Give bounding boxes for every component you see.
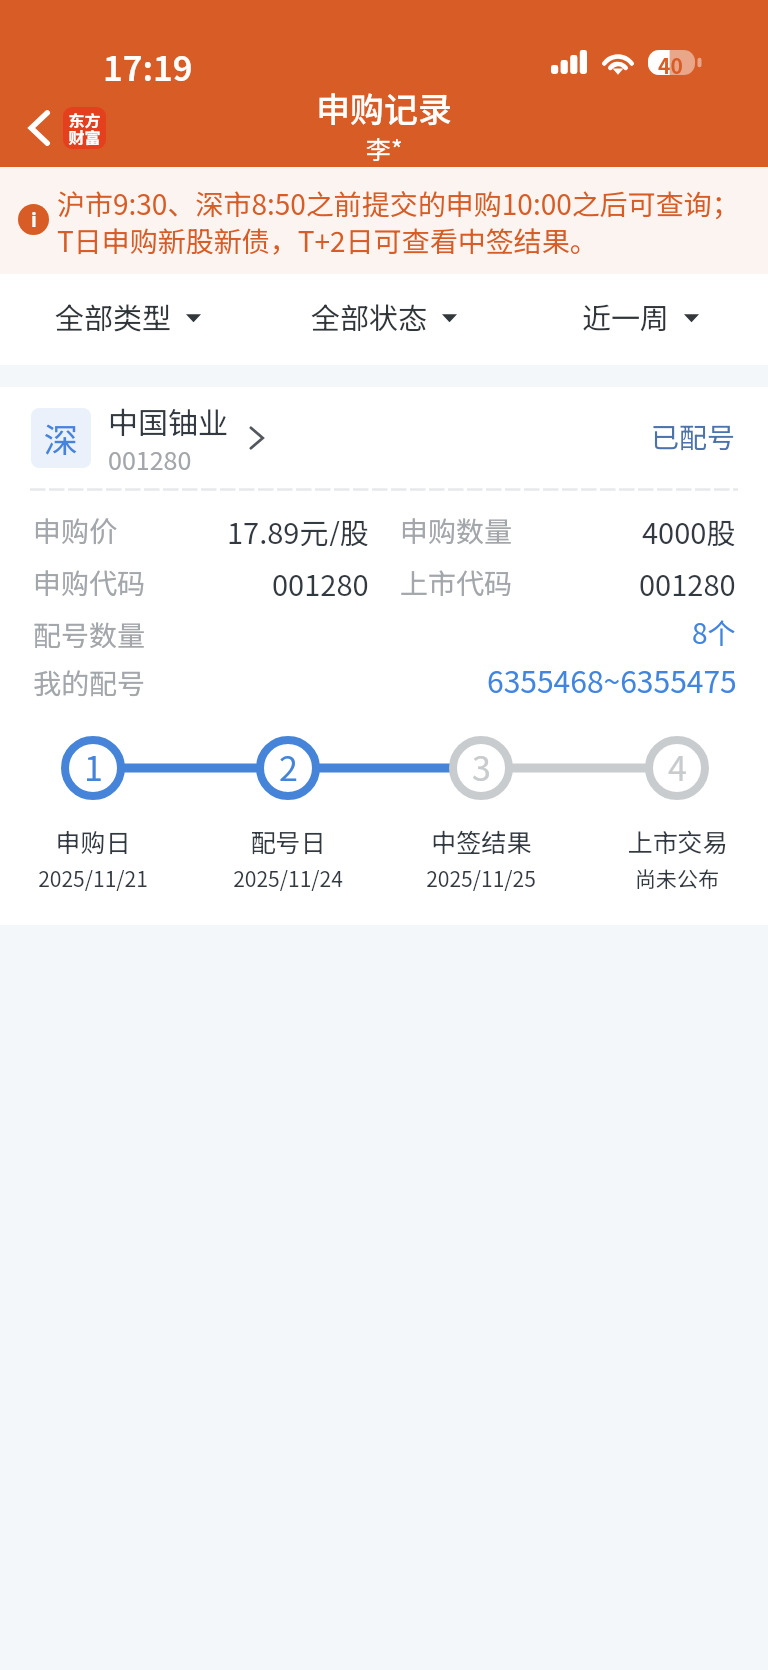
staticText: 2025/11/21 <box>38 863 148 893</box>
staticText: 001280 <box>272 562 369 598</box>
staticText: 4000股 <box>642 510 736 546</box>
staticText: 001280 <box>108 441 192 477</box>
button[interactable]: Back <box>20 103 112 153</box>
staticText: 40 <box>658 50 683 75</box>
staticText: 沪市9:30、深市8:50之前提交的申购10:00之后可查询； T日申购新股新债… <box>57 183 740 260</box>
staticText: 全部状态 <box>311 295 428 337</box>
staticText: 配号日 <box>250 823 326 859</box>
staticText: 4 <box>668 742 687 791</box>
staticText: 中签结果 <box>431 823 532 859</box>
staticText: i <box>31 205 37 233</box>
staticText: 东方 财富 <box>68 108 101 149</box>
staticText: 申购价 <box>33 510 118 546</box>
staticText: 申购日 <box>55 823 131 859</box>
staticText: 李* <box>366 130 403 166</box>
staticText: 我的配号 <box>33 662 146 700</box>
staticText: 深 <box>44 414 78 463</box>
staticText: 中国铀业 <box>108 399 228 442</box>
staticText: 1 <box>84 742 103 791</box>
staticText: 全部类型 <box>55 295 172 337</box>
staticText: 2025/11/25 <box>426 863 536 893</box>
staticText: 2025/11/24 <box>233 863 343 893</box>
button[interactable]: 深 <box>0 387 768 489</box>
staticText: 配号数量 <box>33 614 146 648</box>
staticText: 3 <box>472 742 491 791</box>
staticText: 已配号 <box>651 416 736 457</box>
staticText: 尚未公布 <box>635 863 719 893</box>
staticText: 17:19 <box>103 42 193 91</box>
staticText: 申购代码 <box>33 562 146 598</box>
button[interactable]: 近一周 <box>512 295 768 337</box>
staticText: 上市交易 <box>627 823 728 859</box>
staticText: 8个 <box>692 612 736 646</box>
button[interactable]: 全部状态 <box>256 295 512 337</box>
staticText: 上市代码 <box>400 562 513 598</box>
staticText: 申购记录 <box>316 83 452 132</box>
staticText: 17.89元/股 <box>227 510 369 546</box>
staticText: 6355468~6355475 <box>487 658 737 696</box>
staticText: 申购数量 <box>400 510 513 546</box>
staticText: 001280 <box>639 562 736 598</box>
staticText: 2 <box>279 742 298 791</box>
staticText: 近一周 <box>582 295 670 337</box>
button[interactable]: 全部类型 <box>0 295 256 337</box>
